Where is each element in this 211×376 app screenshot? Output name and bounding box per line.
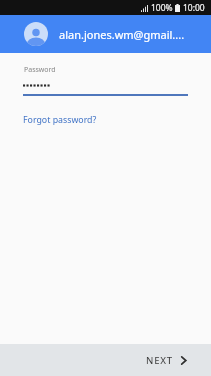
button[interactable]: NEXT	[130, 346, 211, 375]
button[interactable]: alan.jones.wm@gmail....	[0, 15, 211, 53]
staticText: 10:00	[183, 2, 205, 14]
other: Password entered	[23, 82, 51, 89]
button[interactable]: Forgot password?	[0, 110, 107, 129]
staticText: Forgot password?	[23, 114, 97, 126]
staticText: NEXT	[146, 354, 174, 367]
staticText: 100%	[151, 2, 173, 14]
staticText: Password	[24, 65, 56, 75]
staticText: alan.jones.wm@gmail....	[59, 27, 185, 42]
button[interactable]: Password	[0, 53, 211, 96]
